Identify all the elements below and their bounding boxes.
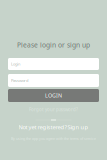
- staticText: Login: [11, 61, 20, 67]
- staticText: Please login or sign up: [17, 40, 90, 50]
- staticText: Password: [11, 78, 28, 83]
- button[interactable]: LOGIN: [8, 89, 99, 102]
- staticText: By using the app you agree with the term…: [11, 136, 96, 141]
- staticText: LOGIN: [45, 92, 62, 99]
- button[interactable]: Not yet registered? Sign up: [0, 123, 107, 131]
- staticText: Not yet registered? Sign up: [18, 123, 88, 131]
- staticText: Forgot your password?: [29, 106, 78, 112]
